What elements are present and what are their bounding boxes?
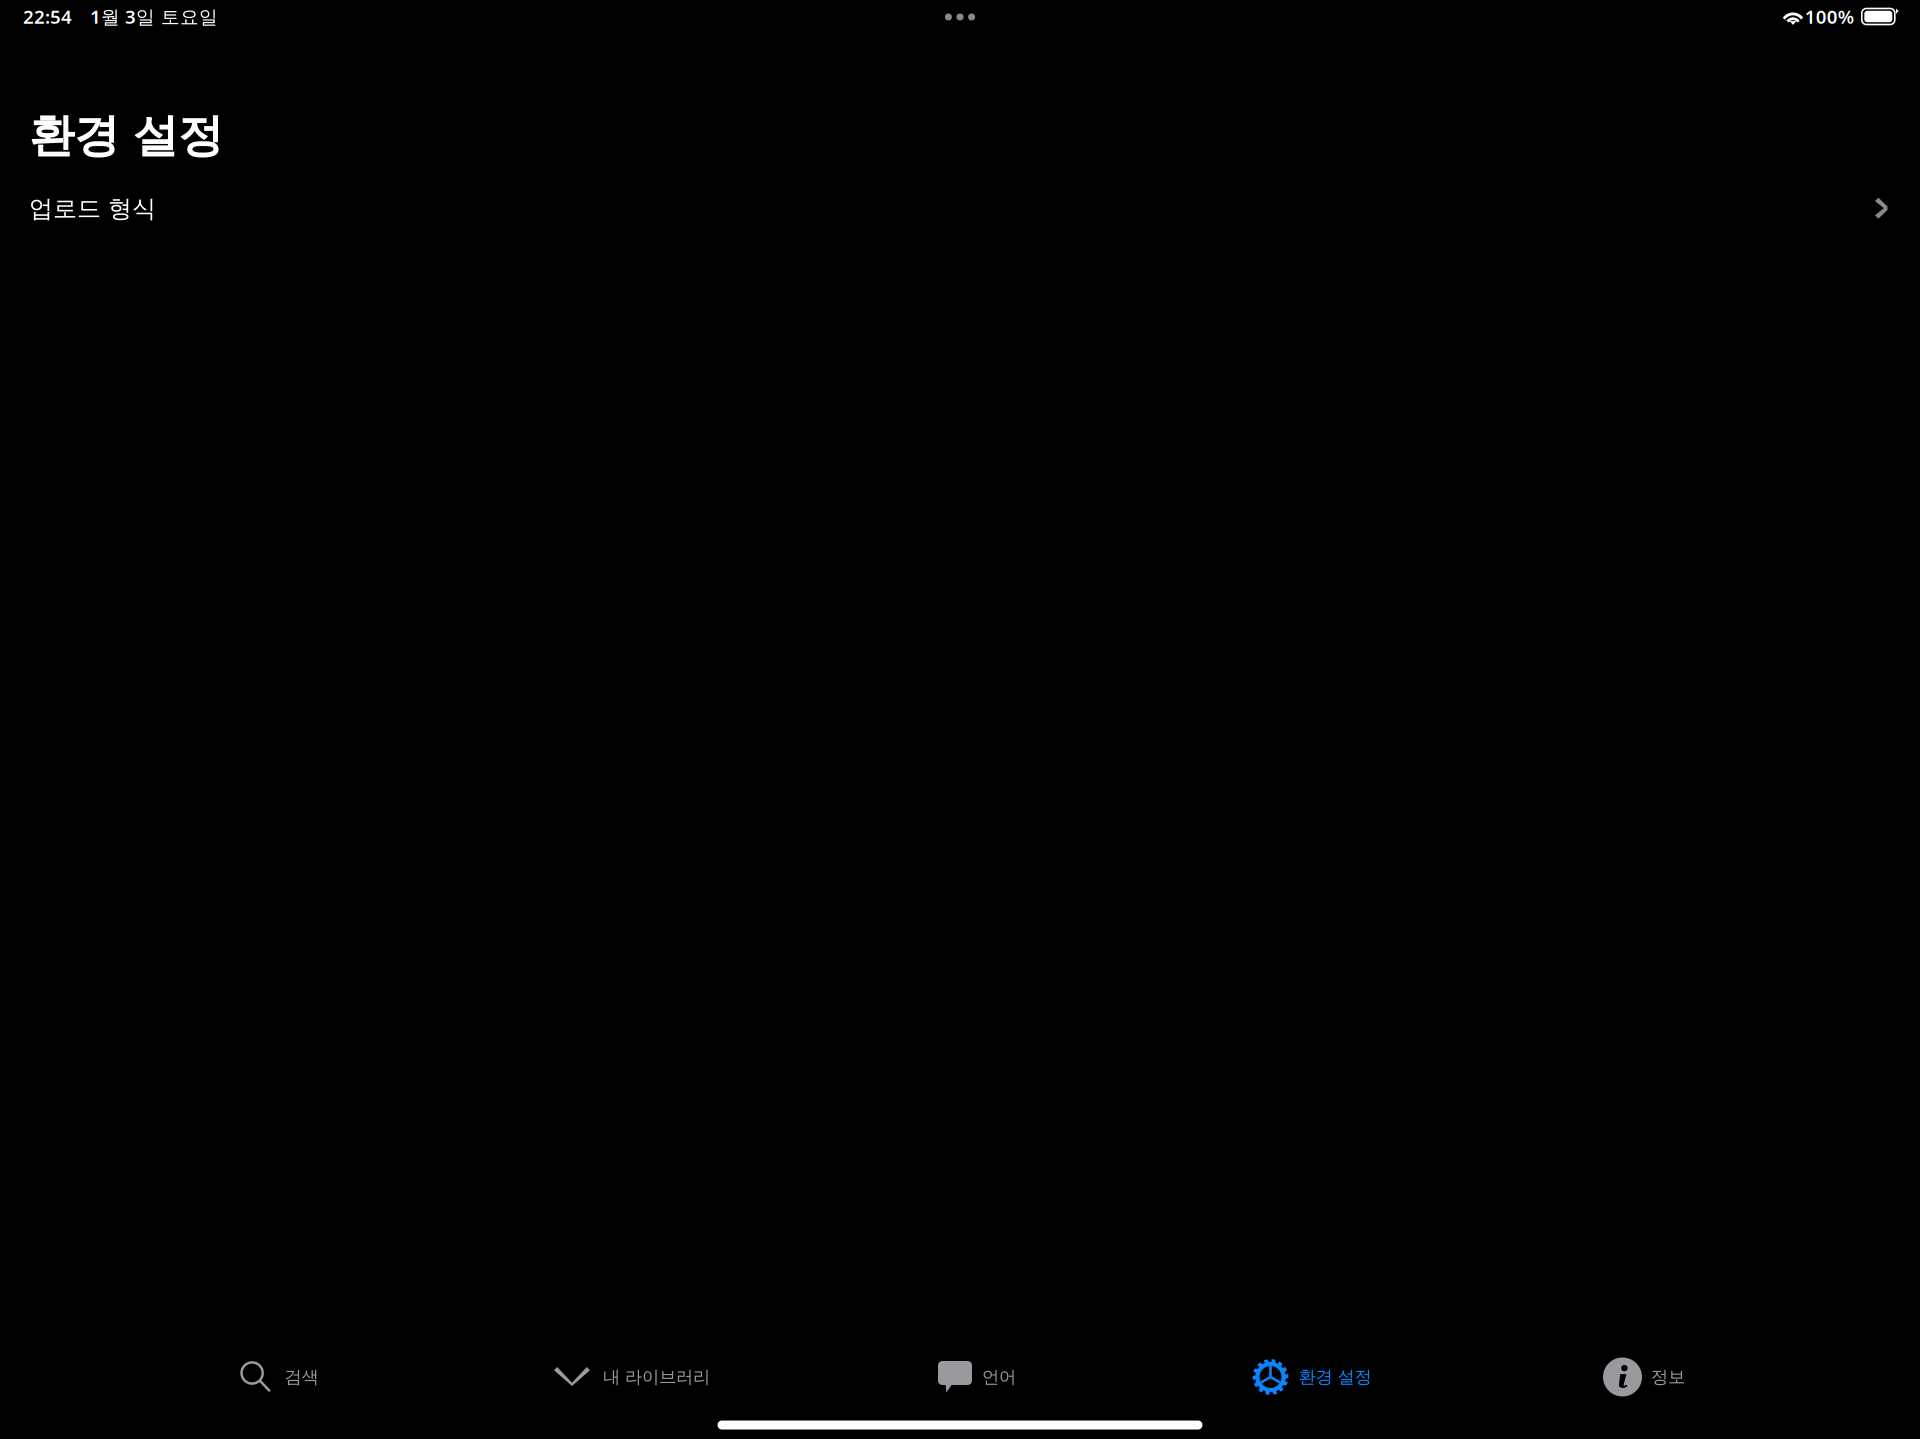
staticText: 정보 (1651, 1366, 1685, 1388)
staticText: 1월 3일 토요일 (90, 4, 218, 29)
staticText: 업로드 형식 (29, 194, 156, 223)
staticText: 환경 설정 (29, 108, 223, 164)
staticText: 검색 (284, 1366, 318, 1388)
button[interactable]: 정보 (1471, 1336, 1812, 1400)
button[interactable]: 언어 (789, 1336, 1130, 1400)
button[interactable]: 환경 설정 (1130, 1336, 1471, 1400)
staticText: 100% (1805, 4, 1854, 29)
button[interactable]: 검색 (107, 1336, 448, 1400)
staticText: 언어 (982, 1366, 1016, 1388)
staticText: 내 라이브러리 (603, 1366, 710, 1388)
button[interactable]: 내 라이브러리 (448, 1336, 789, 1400)
staticText: 환경 설정 (1298, 1366, 1371, 1388)
button[interactable]: 업로드 형식 (0, 189, 1920, 229)
staticText: 22:54 (23, 4, 72, 29)
